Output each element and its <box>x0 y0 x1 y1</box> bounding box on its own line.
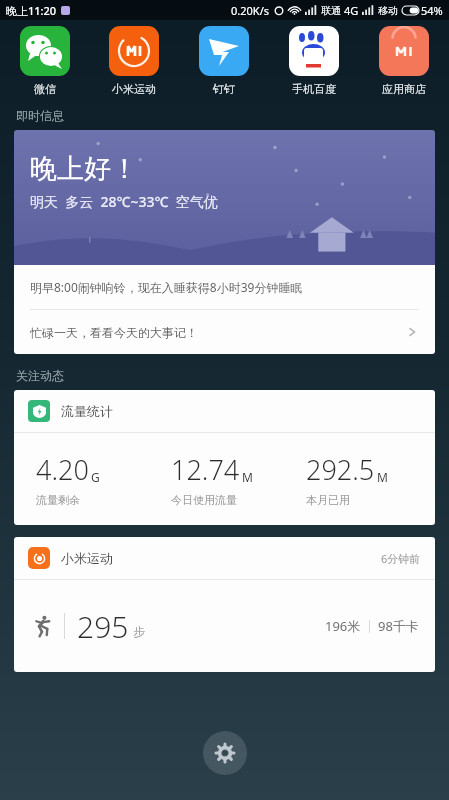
staticText: 移动 <box>378 4 398 17</box>
button[interactable]: 微信 <box>0 24 89 98</box>
staticText: 明早8:00闹钟响铃，现在入睡获得8小时39分钟睡眠 <box>30 279 303 295</box>
staticText: 本月已用 <box>306 493 350 507</box>
button[interactable]: 钉钉 <box>179 24 269 98</box>
staticText: M <box>242 469 253 485</box>
staticText: 小米运动 <box>112 82 156 96</box>
staticText: 钉钉 <box>213 82 235 96</box>
staticText: G <box>91 469 100 485</box>
staticText: 忙碌一天，看看今天的大事记！ <box>30 325 198 340</box>
button[interactable]: 流量统计 <box>14 390 435 525</box>
staticText: 小米运动 <box>61 550 113 566</box>
button[interactable]: 应用商店 <box>359 24 449 98</box>
staticText: 292.5 <box>306 451 375 488</box>
button[interactable]: Settings <box>203 731 247 775</box>
staticText: 6分钟前 <box>381 551 421 566</box>
staticText: 联通 <box>321 4 341 17</box>
button[interactable]: 明早8:00闹钟响铃，现在入睡获得8小时39分钟睡眠 <box>14 265 435 309</box>
staticText: 明天 多云 28℃~33℃ 空气优 <box>30 192 218 211</box>
staticText: 0.20K/s <box>231 3 269 18</box>
staticText: 晚上11:20 <box>6 3 57 18</box>
staticText: 即时信息 <box>16 108 64 123</box>
staticText: 12.74 <box>171 451 240 488</box>
button[interactable]: 手机百度 <box>269 24 359 98</box>
staticText: 54% <box>421 3 443 18</box>
button[interactable]: 忙碌一天，看看今天的大事记！ <box>14 310 435 354</box>
staticText: 4.20 <box>36 451 89 488</box>
staticText: 手机百度 <box>292 82 336 96</box>
staticText: 晚上好！ <box>30 152 138 186</box>
staticText: 今日使用流量 <box>171 493 237 507</box>
staticText: 流量剩余 <box>36 493 80 507</box>
staticText: 步 <box>133 624 145 639</box>
button[interactable]: 小米运动 <box>14 537 435 672</box>
staticText: 应用商店 <box>382 82 426 96</box>
staticText: 295 <box>77 606 129 647</box>
staticText: 4G <box>344 3 359 18</box>
staticText: 196米 <box>325 617 361 635</box>
staticText: 关注动态 <box>16 368 64 383</box>
staticText: 98千卡 <box>378 617 419 635</box>
staticText: M <box>377 469 388 485</box>
staticText: 流量统计 <box>61 403 113 419</box>
button[interactable]: 小米运动 <box>89 24 179 98</box>
button[interactable]: 晚上好！ <box>14 130 435 265</box>
staticText: 微信 <box>34 82 56 96</box>
